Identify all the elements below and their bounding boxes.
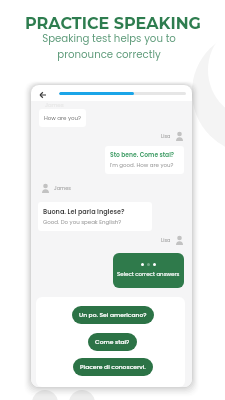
button[interactable]: Back [36, 88, 50, 102]
staticText: Come stai? [95, 338, 130, 346]
staticText: James [54, 185, 71, 192]
staticText: Select correct answers [117, 270, 180, 278]
button[interactable]: Buona. Lei parla inglese? [38, 202, 152, 231]
staticText: How are you? [44, 114, 81, 122]
staticText: PRACTICE SPEAKING [25, 14, 201, 34]
staticText: Lisa [161, 133, 171, 140]
button[interactable]: Come stai? [88, 333, 137, 351]
staticText: Sto bene. Come stai? [110, 151, 175, 159]
button[interactable]: Un po. Sei americano? [72, 306, 154, 324]
button[interactable]: Sto bene. Come stai? [105, 146, 184, 174]
staticText: Un po. Sei americano? [79, 311, 147, 319]
staticText: Buona. Lei parla inglese? [43, 207, 125, 216]
staticText: Piacere di conoscervi. [80, 363, 146, 371]
button[interactable]: How are you? [39, 109, 86, 127]
button[interactable]: Piacere di conoscervi. [73, 358, 153, 376]
staticText: James [45, 101, 64, 109]
staticText: Speaking test helps you to pronounce cor… [42, 31, 176, 61]
staticText: Lisa [161, 237, 171, 244]
staticText: I'm good. How are you? [110, 161, 174, 169]
staticText: Good. Do you speak English? [43, 218, 122, 226]
button[interactable]: Select correct answers [113, 253, 184, 288]
